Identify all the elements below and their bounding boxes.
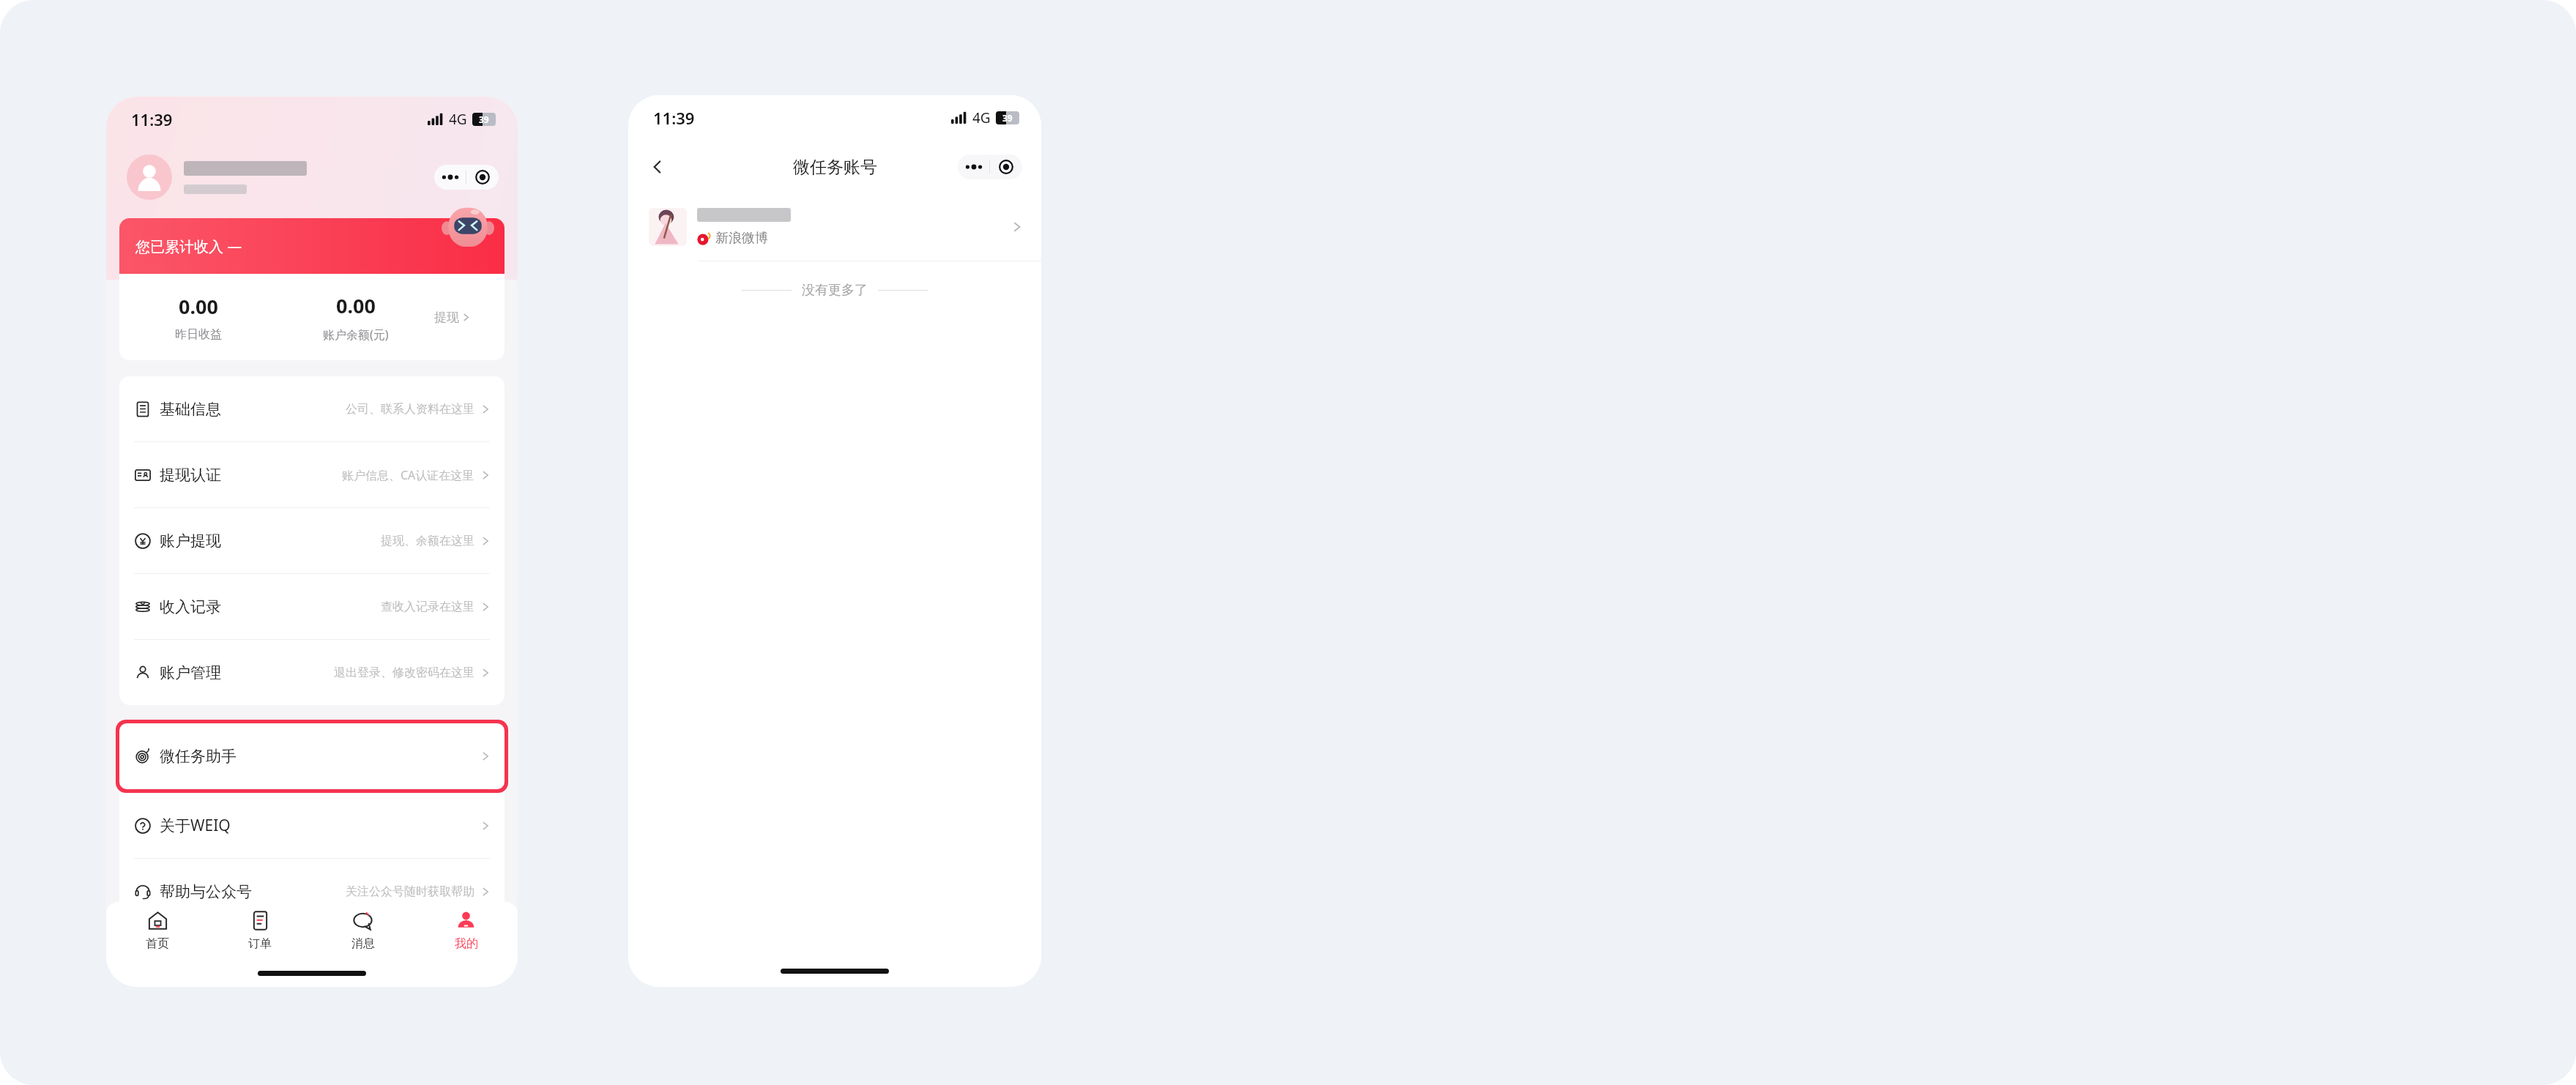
staticText: 我的: [455, 936, 478, 951]
staticText: 消息: [351, 936, 375, 951]
button[interactable]: Close mini program: [466, 165, 499, 190]
staticText: 首页: [146, 936, 169, 951]
button[interactable]: 账户管理: [119, 640, 505, 705]
button[interactable]: 基础信息: [119, 376, 505, 442]
staticText: 帮助与公众号: [160, 882, 252, 901]
staticText: 关于WEIQ: [160, 815, 231, 836]
button[interactable]: 提现认证: [119, 442, 505, 508]
button[interactable]: 微任务助手: [119, 723, 505, 789]
button[interactable]: 新浪微博: [628, 193, 1041, 261]
button[interactable]: 帮助与公众号: [119, 859, 505, 924]
staticText: 收入记录: [160, 597, 221, 616]
staticText: 订单: [248, 936, 272, 951]
button[interactable]: 收入记录: [119, 574, 505, 640]
button[interactable]: More: [434, 165, 466, 190]
staticText: 关注公众号随时获取帮助: [346, 884, 474, 899]
button[interactable]: 订单: [209, 902, 311, 959]
staticText: 4G: [972, 108, 991, 127]
staticText: 基础信息: [160, 400, 221, 419]
staticText: 您已累计收入 —: [135, 236, 242, 256]
staticText: 账户信息、CA认证在这里: [342, 467, 474, 483]
staticText: 39: [1002, 112, 1013, 124]
button[interactable]: 我的: [414, 902, 518, 959]
staticText: 提现、余额在这里: [381, 534, 474, 548]
staticText: 微任务账号: [793, 157, 877, 178]
staticText: 0.00: [336, 292, 376, 319]
button[interactable]: Back: [641, 151, 674, 183]
staticText: 公司、联系人资料在这里: [346, 402, 474, 417]
button[interactable]: 关于WEIQ: [119, 793, 505, 859]
button[interactable]: More: [958, 154, 989, 179]
staticText: 没有更多了: [802, 282, 868, 299]
staticText: 4G: [449, 110, 467, 129]
staticText: 退出登录、修改密码在这里: [334, 665, 474, 680]
staticText: 提现: [434, 310, 459, 325]
staticText: 11:39: [131, 108, 173, 130]
staticText: 账户提现: [160, 532, 221, 551]
button[interactable]: 账户提现: [119, 508, 505, 574]
staticText: 提现认证: [160, 466, 221, 485]
staticText: 11:39: [653, 107, 695, 129]
button[interactable]: 消息: [311, 902, 414, 959]
button[interactable]: 提现: [434, 274, 505, 360]
button[interactable]: Close mini program: [990, 154, 1022, 179]
staticText: 账户管理: [160, 663, 221, 682]
staticText: 0.00: [179, 293, 218, 320]
staticText: 39: [479, 113, 489, 125]
staticText: 新浪微博: [715, 230, 768, 247]
staticText: 昨日收益: [175, 327, 222, 342]
staticText: 查收入记录在这里: [381, 600, 474, 614]
button[interactable]: 首页: [106, 902, 209, 959]
staticText: 微任务助手: [160, 747, 237, 766]
staticText: 账户余额(元): [323, 327, 389, 343]
